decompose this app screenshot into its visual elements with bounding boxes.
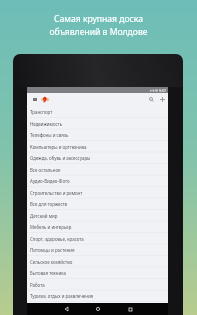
button[interactable]: Menu [32,95,38,104]
button[interactable]: Одежда, обувь и аксессуары [27,152,168,164]
staticText: Транспорт [30,109,53,115]
button[interactable]: Телефоны и связь [27,129,168,141]
staticText: Недвижимость [30,121,63,127]
button[interactable]: Back [59,303,73,315]
button[interactable]: Строительство и ремонт [27,187,168,199]
staticText: Строительство и ремонт [30,190,83,196]
button[interactable]: Мебель и интерьер [27,221,168,233]
button[interactable]: Туризм, отдых и развлечения [27,290,168,302]
staticText: Сельское хозяйство [30,259,73,265]
button[interactable]: Recent apps [123,303,137,315]
button[interactable]: Транспорт [27,106,168,118]
staticText: Аудио-Видео-Фото [30,178,70,184]
staticText: Все остальное [30,167,61,173]
staticText: Самая крупная доска [54,13,143,25]
staticText: Детский мир [30,213,58,219]
button[interactable]: Search [146,94,157,105]
staticText: Компьютеры и оргтехника [30,144,87,150]
staticText: Спорт, здоровье, красота [30,236,84,242]
button[interactable]: Add listing [157,94,168,105]
button[interactable]: Сельское хозяйство [27,256,168,268]
staticText: Работа [30,282,45,288]
staticText: Все для торжеств [30,201,68,207]
button[interactable]: Аудио-Видео-Фото [27,175,168,187]
button[interactable]: Бытовая техника [27,267,168,279]
button[interactable]: Все для торжеств [27,198,168,210]
staticText: объявлений в Молдове [49,26,148,38]
button[interactable]: Компьютеры и оргтехника [27,141,168,153]
staticText: Одежда, обувь и аксессуары [30,155,91,161]
staticText: Питомцы и растения [30,247,75,253]
staticText: Бытовая техника [30,270,66,276]
staticText: Туризм, отдых и развлечения [30,293,94,299]
staticText: 9:07 [159,88,167,93]
button[interactable]: Питомцы и растения [27,244,168,256]
button[interactable]: Спорт, здоровье, красота [27,233,168,245]
button[interactable]: Работа [27,279,168,291]
button[interactable]: Детский мир [27,210,168,222]
button[interactable]: Недвижимость [27,118,168,130]
staticText: Мебель и интерьер [30,224,72,230]
staticText: Телефоны и связь [30,132,69,138]
button[interactable]: Home [91,303,105,315]
button[interactable]: Все остальное [27,164,168,176]
